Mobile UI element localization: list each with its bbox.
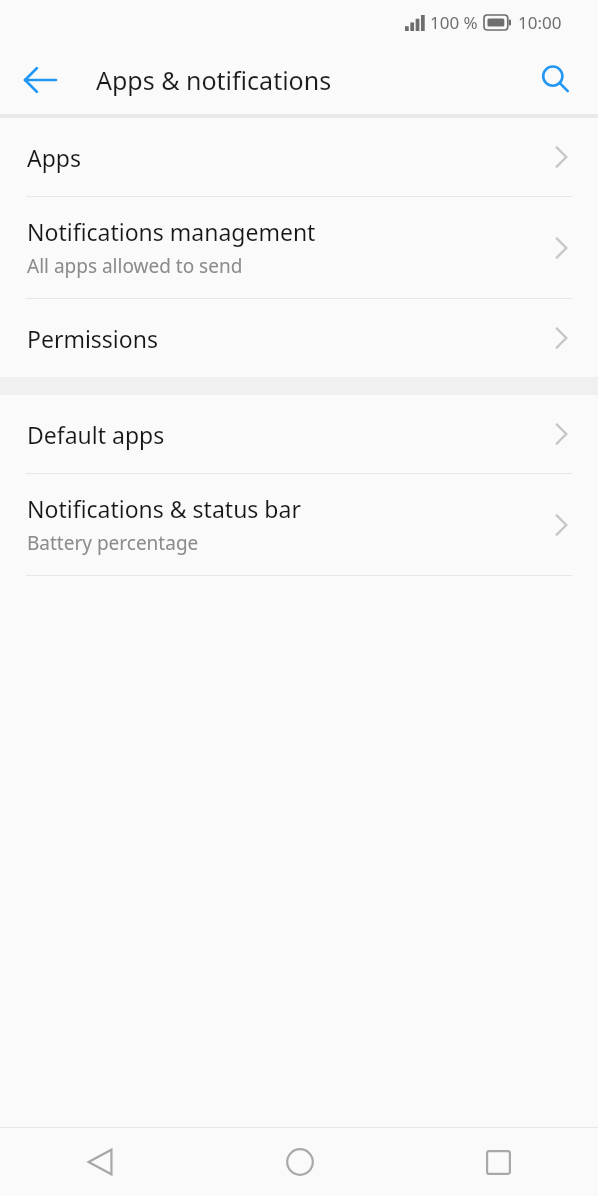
button[interactable]: Back <box>0 1128 200 1196</box>
button[interactable]: Notifications management <box>0 197 598 298</box>
button[interactable]: Back <box>14 54 66 106</box>
button[interactable]: Notifications & status bar <box>0 474 598 575</box>
staticText: 10:00 <box>518 11 562 34</box>
button[interactable]: Default apps <box>0 395 598 473</box>
staticText: 100 % <box>430 11 478 34</box>
button[interactable]: Apps <box>0 118 598 196</box>
staticText: Notifications management <box>27 216 316 247</box>
staticText: Permissions <box>27 323 158 354</box>
staticText: All apps allowed to send <box>27 253 243 279</box>
staticText: Default apps <box>27 419 165 450</box>
button[interactable]: Search <box>530 54 582 106</box>
button[interactable]: Home <box>200 1128 399 1196</box>
staticText: Notifications & status bar <box>27 493 301 524</box>
staticText: Battery percentage <box>27 530 199 556</box>
button[interactable]: Permissions <box>0 299 598 377</box>
staticText: Apps & notifications <box>96 63 332 97</box>
staticText: Apps <box>27 142 82 173</box>
button[interactable]: Recent apps <box>399 1128 598 1196</box>
